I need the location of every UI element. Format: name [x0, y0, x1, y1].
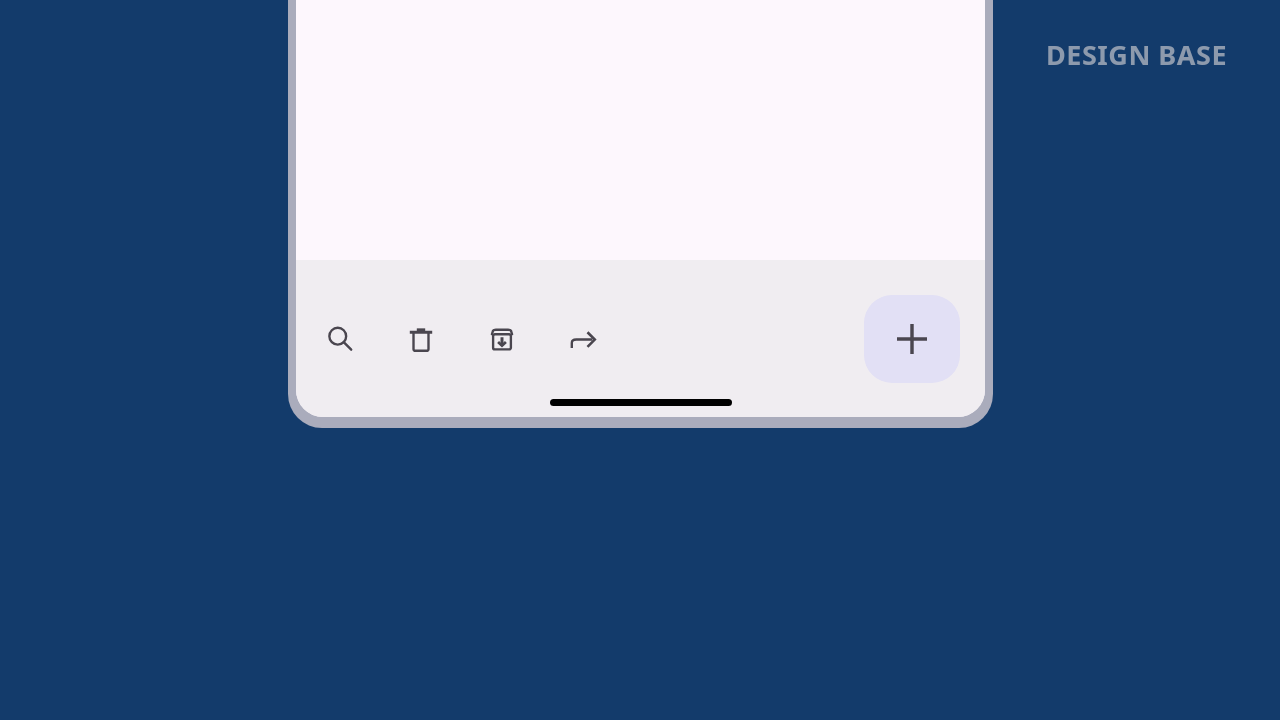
- button[interactable]: Create new: [864, 295, 960, 383]
- button[interactable]: Forward: [559, 315, 607, 363]
- button[interactable]: Delete: [397, 315, 445, 363]
- button[interactable]: Search: [316, 315, 364, 363]
- button[interactable]: Archive: [478, 315, 526, 363]
- staticText: DESIGN BASE: [1046, 36, 1227, 73]
